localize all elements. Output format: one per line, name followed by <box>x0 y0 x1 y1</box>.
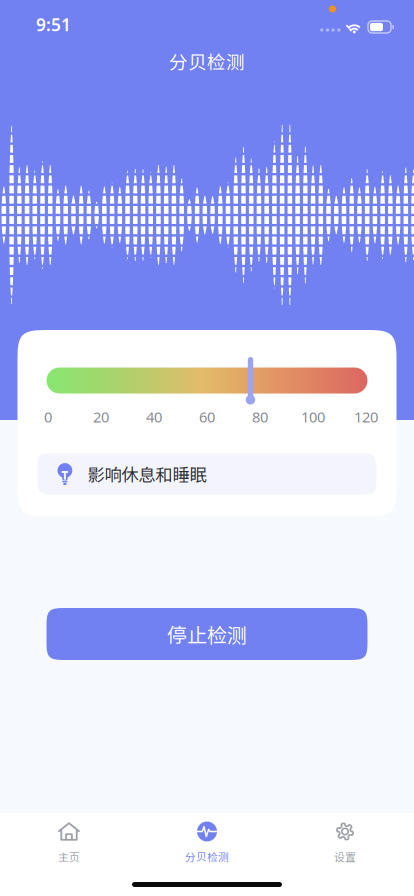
staticText: 9:51 <box>36 13 71 36</box>
staticText: 80 <box>252 407 268 426</box>
button[interactable]: 主页 <box>0 822 138 864</box>
staticText: 120 <box>354 407 378 426</box>
staticText: 主页 <box>58 849 80 864</box>
staticText: 0 <box>44 407 52 426</box>
staticText: 20 <box>93 407 109 426</box>
staticText: 停止检测 <box>167 619 247 648</box>
staticText: 分贝检测 <box>185 849 229 864</box>
button[interactable]: 停止检测 <box>46 608 367 660</box>
staticText: 100 <box>301 407 325 426</box>
staticText: 分贝检测 <box>169 47 245 74</box>
button[interactable]: 设置 <box>276 822 414 864</box>
staticText: 设置 <box>334 849 356 864</box>
staticText: 影响休息和睡眠 <box>87 461 206 486</box>
button[interactable]: 分贝检测 <box>138 822 276 864</box>
staticText: 40 <box>146 407 162 426</box>
staticText: 60 <box>199 407 215 426</box>
